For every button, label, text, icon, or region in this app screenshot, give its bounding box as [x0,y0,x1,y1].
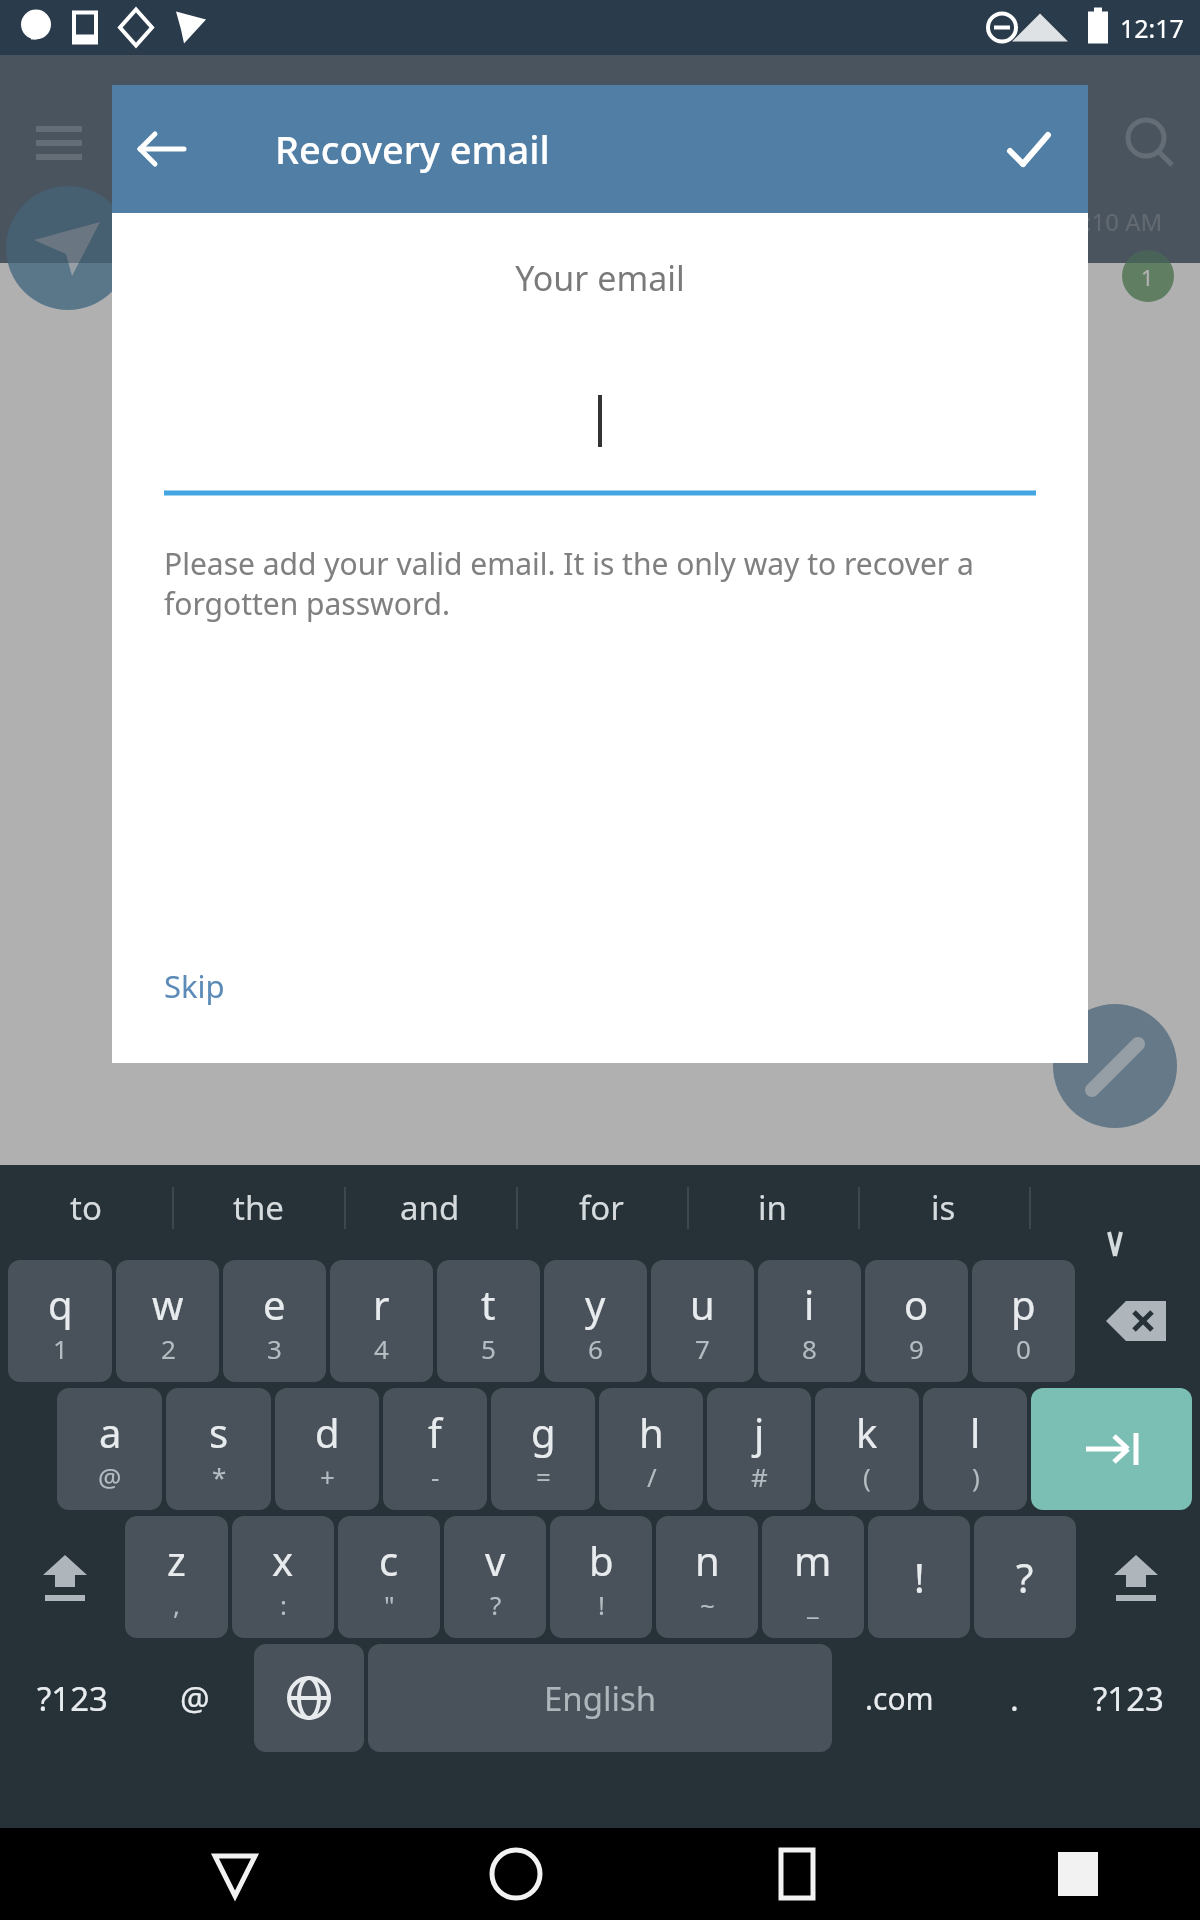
staticText: + [320,1459,335,1494]
button[interactable]: Change language [254,1644,364,1752]
staticText: j [754,1405,765,1459]
button[interactable]: x [232,1516,334,1638]
button[interactable]: v [444,1516,546,1638]
button[interactable]: y [544,1260,647,1382]
staticText: in [758,1185,787,1230]
button[interactable]: a [57,1388,162,1510]
button[interactable]: z [125,1516,228,1638]
staticText: . [1010,1676,1019,1721]
button[interactable]: ? [974,1516,1076,1638]
staticText: English [544,1676,657,1721]
button[interactable]: h [599,1388,703,1510]
button[interactable]: Shift [8,1516,121,1638]
staticText: _ [807,1587,819,1622]
button[interactable]: ?123 [1065,1644,1192,1752]
button[interactable]: Back [189,1828,281,1920]
button[interactable]: e [223,1260,326,1382]
staticText: e [263,1277,286,1331]
staticText: b [589,1533,614,1587]
button[interactable]: Keyboard [1032,1828,1124,1920]
button[interactable]: Back [124,111,200,187]
staticText: " [384,1587,395,1622]
button[interactable]: Hide keyboard [1029,1165,1200,1250]
staticText: # [751,1459,768,1494]
staticText: 0 [1016,1331,1031,1366]
staticText: for [579,1185,624,1230]
button[interactable]: Home [470,1828,562,1920]
button[interactable]: the [172,1165,344,1250]
button[interactable]: s [166,1388,271,1510]
button[interactable]: Done [990,111,1066,187]
button[interactable]: k [815,1388,919,1510]
staticText: 7 [695,1331,710,1366]
button[interactable]: j [707,1388,811,1510]
staticText: f [428,1405,442,1459]
staticText: 8 [802,1331,817,1366]
staticText: 6 [588,1331,603,1366]
staticText: i [804,1277,815,1331]
staticText: the [233,1185,284,1230]
staticText: @ [98,1459,122,1494]
button[interactable]: o [865,1260,968,1382]
staticText: / [647,1459,657,1494]
button[interactable]: n [656,1516,758,1638]
staticText: t [481,1277,496,1331]
button[interactable]: Next [1031,1388,1192,1510]
staticText: q [48,1277,73,1331]
button[interactable]: d [275,1388,379,1510]
button[interactable]: is [858,1165,1029,1250]
staticText: 3 [267,1331,282,1366]
button[interactable]: @ [140,1644,250,1752]
staticText: * [212,1459,227,1494]
staticText: o [904,1277,929,1331]
button[interactable]: Shift [1080,1516,1192,1638]
button[interactable]: c [338,1516,440,1638]
button[interactable]: i [758,1260,861,1382]
staticText: v [485,1533,506,1587]
staticText: Your email [112,255,1088,301]
staticText: a [99,1405,122,1459]
staticText: k [856,1405,878,1459]
button[interactable]: r [330,1260,433,1382]
button[interactable]: q [8,1260,112,1382]
button[interactable]: .com [836,1644,963,1752]
button[interactable]: u [651,1260,754,1382]
staticText: n [695,1533,720,1587]
staticText: h [639,1405,664,1459]
staticText: s [209,1405,229,1459]
button[interactable]: Backspace [1079,1260,1192,1382]
button[interactable]: ?123 [8,1644,136,1752]
button[interactable]: in [687,1165,858,1250]
staticText: = [536,1459,551,1494]
staticText: ?123 [37,1676,108,1721]
button[interactable]: m [762,1516,864,1638]
button[interactable]: Skip [152,957,237,1015]
button[interactable]: w [116,1260,219,1382]
button[interactable]: for [516,1165,687,1250]
button[interactable]: t [437,1260,540,1382]
staticText: Recovery email [275,123,550,175]
staticText: Skip [164,965,225,1007]
button[interactable]: Recents [751,1828,843,1920]
button[interactable]: b [550,1516,652,1638]
button[interactable]: . [967,1644,1061,1752]
button[interactable]: ! [868,1516,970,1638]
staticText: l [970,1405,981,1459]
staticText: @ [180,1676,210,1721]
staticText: w [152,1277,184,1331]
staticText: and [400,1185,460,1230]
staticText: is [931,1185,956,1230]
staticText: z [167,1533,186,1587]
staticText: .com [865,1678,934,1719]
staticText: ! [914,1550,925,1604]
staticText: ! [598,1587,605,1622]
staticText: 1 [53,1331,68,1366]
button[interactable]: f [383,1388,487,1510]
button[interactable]: to [0,1165,172,1250]
button[interactable]: English [368,1644,832,1752]
button[interactable]: g [491,1388,595,1510]
button[interactable]: p [972,1260,1075,1382]
button[interactable]: and [344,1165,516,1250]
button[interactable]: l [923,1388,1027,1510]
staticText: : [280,1587,287,1622]
